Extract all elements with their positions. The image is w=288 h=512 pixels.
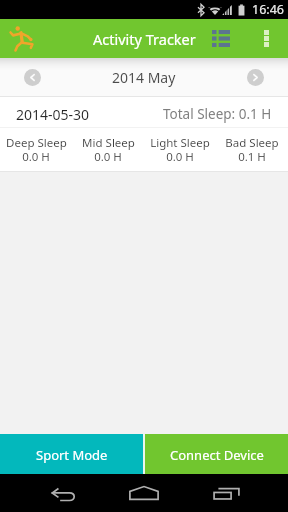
staticText: 2014-05-30 bbox=[16, 105, 90, 124]
staticText: Sport Mode bbox=[36, 446, 108, 464]
button[interactable]: Previous month bbox=[24, 69, 41, 86]
button[interactable]: Back bbox=[40, 474, 86, 512]
button[interactable]: List view bbox=[202, 19, 240, 58]
staticText: 2014 May bbox=[112, 68, 176, 87]
staticText: Total Sleep: 0.1 H bbox=[163, 105, 272, 123]
button[interactable]: Activity Tracker home bbox=[0, 19, 43, 58]
staticText: 0.0 H bbox=[166, 149, 194, 165]
button[interactable]: Connect Device bbox=[145, 434, 288, 474]
staticText: Bad Sleep bbox=[225, 135, 279, 151]
staticText: Mid Sleep bbox=[82, 135, 135, 151]
staticText: Connect Device bbox=[170, 446, 264, 464]
button[interactable]: Home bbox=[122, 474, 166, 512]
button[interactable]: 2014-05-30 bbox=[0, 96, 288, 172]
staticText: Light Sleep bbox=[150, 135, 210, 151]
staticText: Activity Tracker bbox=[93, 29, 196, 49]
button[interactable]: Recent apps bbox=[204, 474, 248, 512]
staticText: 0.0 H bbox=[94, 149, 122, 165]
button[interactable]: Next month bbox=[247, 69, 264, 86]
button[interactable]: More options bbox=[246, 19, 286, 58]
button[interactable]: Sport Mode bbox=[0, 434, 143, 474]
staticText: Deep Sleep bbox=[6, 135, 67, 151]
staticText: 0.0 H bbox=[22, 149, 50, 165]
staticText: 16:46 bbox=[252, 1, 284, 18]
staticText: 0.1 H bbox=[238, 149, 266, 165]
